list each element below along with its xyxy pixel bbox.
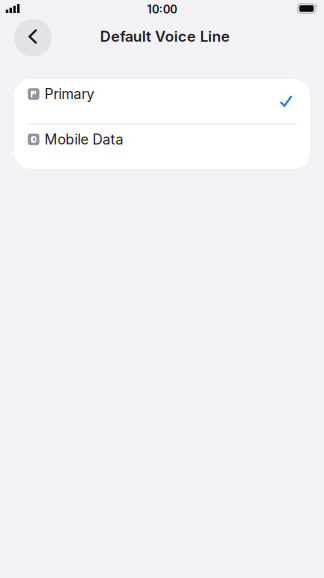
staticText: 10:00 <box>147 3 177 16</box>
staticText: Mobile Data <box>45 131 124 148</box>
button[interactable]: Mobile Data <box>14 124 310 169</box>
staticText: Default Voice Line <box>100 28 230 45</box>
button[interactable]: Back <box>14 19 52 57</box>
staticText: Primary <box>45 85 95 102</box>
button[interactable]: Primary <box>14 79 310 123</box>
